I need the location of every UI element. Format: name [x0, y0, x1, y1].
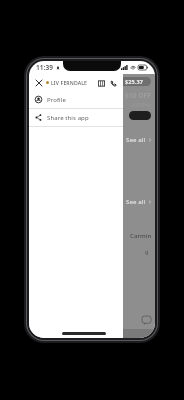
button[interactable]: See all [29, 136, 152, 144]
staticText: 11:39 [36, 63, 54, 72]
staticText: Carmin [130, 232, 152, 240]
staticText: $10 OFF [125, 91, 151, 100]
button[interactable]: Profile [29, 91, 123, 108]
staticText: LIV FERNDALE [51, 79, 88, 86]
staticText: See all [126, 198, 146, 206]
staticText: Share this app [47, 114, 89, 122]
staticText: g [145, 248, 149, 255]
staticText: Profile [47, 96, 66, 104]
button[interactable]: Map [96, 78, 106, 88]
button[interactable]: Close [34, 78, 43, 87]
button[interactable]: Call [108, 78, 118, 88]
staticText: $25.37 [125, 78, 143, 85]
staticText: See all [126, 136, 146, 144]
button[interactable]: See all [29, 198, 152, 206]
button[interactable]: Share this app [29, 109, 123, 126]
